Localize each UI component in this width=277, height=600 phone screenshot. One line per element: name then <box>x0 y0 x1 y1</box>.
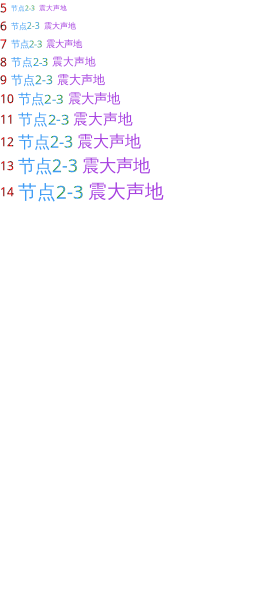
staticText: 5 <box>0 0 7 16</box>
staticText: 节点2-3 <box>11 21 40 31</box>
staticText: 9 <box>0 72 7 88</box>
staticText: 震大声地 <box>39 4 67 12</box>
staticText: 节点2-3 <box>18 90 64 107</box>
staticText: 6 <box>0 18 7 34</box>
staticText: 14 <box>0 184 14 199</box>
staticText: 节点2-3 <box>11 38 42 50</box>
staticText: 节点2-3 <box>18 109 69 129</box>
staticText: 节点2-3 <box>11 72 53 88</box>
staticText: 节点2-3 <box>11 3 35 12</box>
staticText: 10 <box>0 91 14 106</box>
staticText: 震大声地 <box>77 132 141 151</box>
staticText: 节点2-3 <box>11 55 48 69</box>
staticText: 7 <box>0 36 7 52</box>
staticText: 12 <box>0 133 14 149</box>
staticText: 震大声地 <box>73 110 133 128</box>
staticText: 节点2-3 <box>18 131 73 152</box>
staticText: 震大声地 <box>82 155 150 176</box>
staticText: 震大声地 <box>44 21 76 31</box>
staticText: 13 <box>0 158 14 174</box>
staticText: 节点2-3 <box>18 179 84 204</box>
staticText: 11 <box>0 111 14 127</box>
staticText: 震大声地 <box>68 90 120 107</box>
staticText: 震大声地 <box>52 55 96 68</box>
staticText: 节点2-3 <box>18 154 78 177</box>
staticText: 震大声地 <box>57 72 105 87</box>
staticText: 震大声地 <box>88 180 164 203</box>
staticText: 震大声地 <box>46 38 82 50</box>
staticText: 8 <box>0 54 7 70</box>
